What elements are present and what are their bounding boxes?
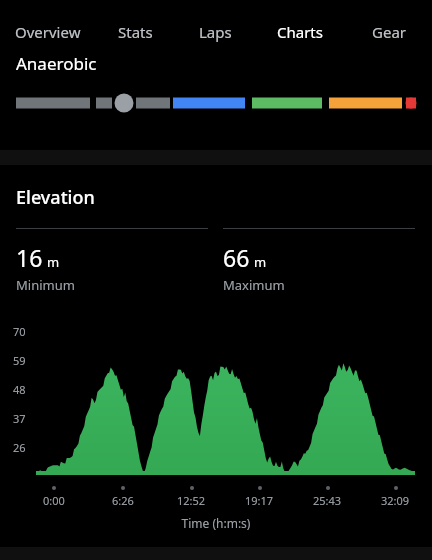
staticText: 0:00 (43, 493, 65, 508)
staticText: 48 (13, 382, 26, 397)
button[interactable]: Laps (175, 0, 255, 49)
button[interactable]: Stats (95, 0, 175, 49)
staticText: Charts (277, 22, 323, 42)
staticText: Stats (118, 22, 153, 42)
staticText: Anaerobic (16, 52, 97, 75)
staticText: Overview (15, 22, 81, 42)
button[interactable]: Overview (0, 0, 95, 49)
staticText: Minimum (16, 276, 75, 294)
staticText: Elevation (16, 185, 95, 210)
staticText: 6:26 (112, 493, 134, 508)
staticText: 59 (13, 353, 26, 368)
staticText: Gear (372, 22, 406, 42)
staticText: 16 (16, 242, 43, 273)
staticText: 26 (13, 440, 26, 455)
staticText: 66 (223, 242, 250, 273)
staticText: 19:17 (245, 493, 274, 508)
staticText: Laps (199, 22, 232, 42)
staticText: 25:43 (313, 493, 342, 508)
button[interactable]: Charts (255, 0, 345, 49)
staticText: 32:09 (381, 493, 410, 508)
staticText: 70 (13, 324, 26, 339)
staticText: 12:52 (177, 493, 206, 508)
staticText: Maximum (223, 276, 285, 294)
staticText: 37 (13, 411, 26, 426)
staticText: Time (h:m:s) (0, 515, 432, 531)
staticText: m (47, 253, 60, 271)
staticText: m (254, 253, 267, 271)
button[interactable]: Gear (345, 0, 432, 49)
